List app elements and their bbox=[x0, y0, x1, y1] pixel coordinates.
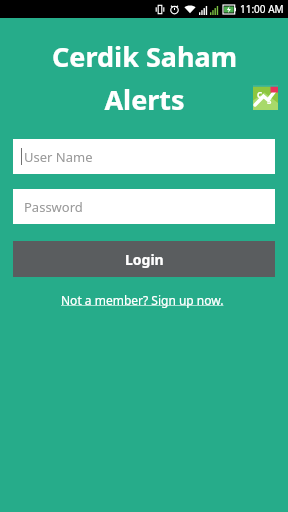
staticText: 11:00 AM bbox=[240, 2, 284, 16]
staticText: Alerts bbox=[104, 81, 185, 118]
staticText: Login bbox=[125, 250, 164, 269]
staticText: User Name bbox=[24, 148, 93, 166]
button[interactable]: Password bbox=[13, 189, 275, 224]
staticText: Not a member? Sign up now. bbox=[61, 292, 227, 308]
staticText: Cerdik Saham bbox=[52, 38, 237, 75]
button[interactable]: Not a member? Sign up now. bbox=[55, 290, 233, 310]
staticText: S bbox=[267, 95, 272, 106]
staticText: Password bbox=[24, 198, 83, 216]
button[interactable]: Login bbox=[13, 241, 275, 277]
other: Cerdik Saham app icon bbox=[253, 85, 278, 110]
button[interactable]: User Name bbox=[13, 139, 275, 174]
staticText: C bbox=[257, 89, 263, 100]
